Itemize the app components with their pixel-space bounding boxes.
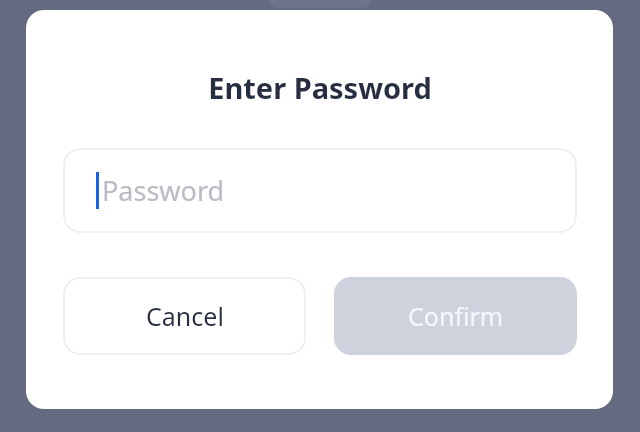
staticText: Password xyxy=(102,172,225,209)
staticText: Confirm xyxy=(408,299,504,333)
button[interactable]: Confirm xyxy=(334,277,577,355)
button[interactable]: Cancel xyxy=(63,277,306,355)
staticText: Cancel xyxy=(146,299,224,333)
staticText: Enter Password xyxy=(208,68,432,107)
button[interactable]: Password xyxy=(63,148,577,233)
